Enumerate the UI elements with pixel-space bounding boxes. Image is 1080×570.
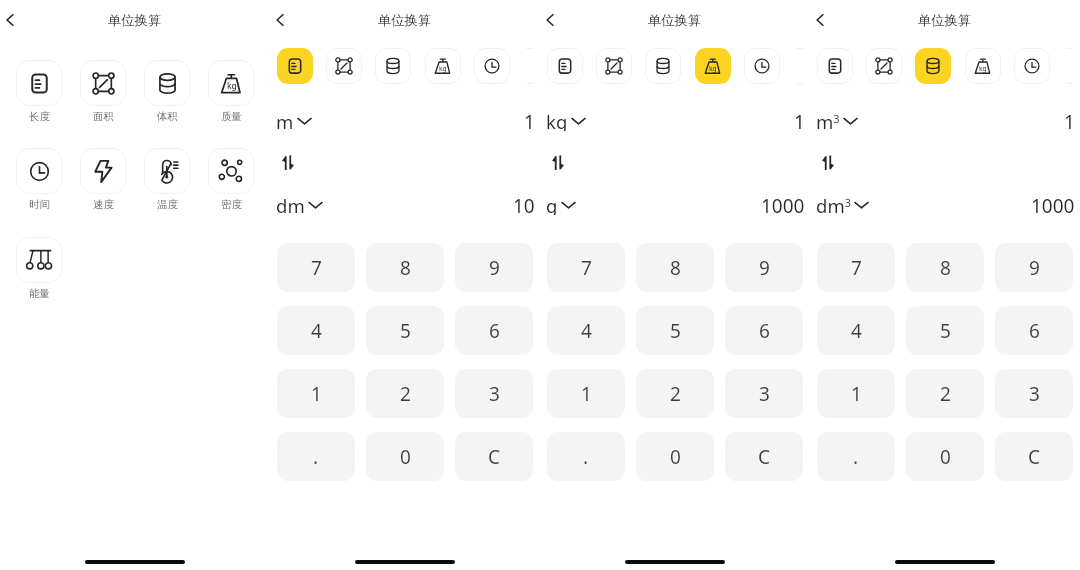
button[interactable]: C bbox=[725, 432, 803, 481]
button[interactable]: . bbox=[277, 432, 355, 481]
staticText: 0 bbox=[940, 444, 951, 470]
staticText: 单位换算 bbox=[108, 12, 162, 29]
button[interactable]: 5 bbox=[636, 306, 714, 355]
staticText: dm3 bbox=[816, 193, 851, 215]
staticText: 时间 bbox=[29, 198, 50, 211]
button[interactable]: 7 bbox=[817, 243, 895, 292]
staticText: 7 bbox=[851, 255, 862, 281]
button[interactable]: Length bbox=[817, 48, 853, 84]
button[interactable]: Back bbox=[270, 10, 290, 30]
button[interactable]: 6 bbox=[995, 306, 1073, 355]
button[interactable]: dm bbox=[276, 193, 323, 215]
button[interactable]: 2 bbox=[636, 369, 714, 418]
button[interactable]: 7 bbox=[547, 243, 625, 292]
button[interactable]: Length bbox=[547, 48, 583, 84]
button[interactable]: 长度 bbox=[16, 60, 62, 123]
button[interactable]: 能量 bbox=[16, 237, 62, 300]
button[interactable]: dm3 bbox=[816, 193, 869, 215]
staticText: 0 bbox=[670, 444, 681, 470]
button[interactable]: kg bbox=[546, 109, 586, 131]
button[interactable]: 5 bbox=[366, 306, 444, 355]
button[interactable]: Time bbox=[1014, 48, 1050, 84]
staticText: C bbox=[1028, 444, 1041, 470]
button[interactable]: 4 bbox=[277, 306, 355, 355]
button[interactable]: 2 bbox=[906, 369, 984, 418]
button[interactable]: Swap units bbox=[276, 151, 299, 174]
button[interactable]: 温度 bbox=[144, 148, 190, 211]
staticText: 1 bbox=[581, 381, 592, 407]
button[interactable]: 3 bbox=[725, 369, 803, 418]
staticText: 1000 bbox=[761, 193, 805, 215]
button[interactable]: 6 bbox=[725, 306, 803, 355]
button[interactable]: 0 bbox=[636, 432, 714, 481]
staticText: 能量 bbox=[29, 287, 50, 300]
staticText: 质量 bbox=[221, 110, 242, 123]
button[interactable]: kg bbox=[208, 60, 254, 123]
staticText: 4 bbox=[851, 318, 862, 344]
button[interactable]: 时间 bbox=[16, 148, 62, 211]
staticText: 长度 bbox=[29, 110, 50, 123]
button[interactable]: Area bbox=[596, 48, 632, 84]
button[interactable]: Time bbox=[474, 48, 510, 84]
staticText: . bbox=[583, 444, 589, 470]
button[interactable]: 6 bbox=[455, 306, 533, 355]
button[interactable]: g bbox=[546, 193, 576, 215]
button[interactable]: 3 bbox=[455, 369, 533, 418]
button[interactable]: 9 bbox=[455, 243, 533, 292]
button[interactable]: Swap units bbox=[546, 151, 569, 174]
button[interactable]: Area bbox=[326, 48, 362, 84]
button[interactable]: C bbox=[995, 432, 1073, 481]
button[interactable]: Mass bbox=[425, 48, 461, 84]
button[interactable]: Time bbox=[744, 48, 780, 84]
staticText: m bbox=[276, 109, 294, 131]
staticText: 1000 bbox=[1031, 193, 1075, 215]
button[interactable]: Mass bbox=[965, 48, 1001, 84]
button[interactable]: Volume bbox=[645, 48, 681, 84]
button[interactable]: . bbox=[547, 432, 625, 481]
button[interactable]: 8 bbox=[636, 243, 714, 292]
button[interactable]: Area bbox=[866, 48, 902, 84]
staticText: 6 bbox=[759, 318, 770, 344]
button[interactable]: Back bbox=[0, 10, 20, 30]
button[interactable]: 0 bbox=[366, 432, 444, 481]
button[interactable]: Mass bbox=[695, 48, 731, 84]
button[interactable]: 密度 bbox=[208, 148, 254, 211]
button[interactable]: 1 bbox=[547, 369, 625, 418]
staticText: 9 bbox=[489, 255, 500, 281]
staticText: 3 bbox=[1029, 381, 1040, 407]
button[interactable]: m bbox=[276, 109, 312, 131]
button[interactable]: 9 bbox=[995, 243, 1073, 292]
button[interactable]: 3 bbox=[995, 369, 1073, 418]
button[interactable]: 5 bbox=[906, 306, 984, 355]
button[interactable]: 9 bbox=[725, 243, 803, 292]
button[interactable]: 面积 bbox=[80, 60, 126, 123]
button[interactable]: 8 bbox=[906, 243, 984, 292]
button[interactable]: C bbox=[455, 432, 533, 481]
button[interactable]: Swap units bbox=[816, 151, 839, 174]
button[interactable]: Back bbox=[810, 10, 830, 30]
button[interactable]: 0 bbox=[906, 432, 984, 481]
button[interactable]: Volume bbox=[375, 48, 411, 84]
staticText: . bbox=[853, 444, 859, 470]
button[interactable]: Back bbox=[540, 10, 560, 30]
staticText: kg bbox=[439, 64, 447, 73]
button[interactable]: 1 bbox=[817, 369, 895, 418]
button[interactable]: 2 bbox=[366, 369, 444, 418]
button[interactable]: 4 bbox=[547, 306, 625, 355]
button[interactable]: 8 bbox=[366, 243, 444, 292]
staticText: 3 bbox=[489, 381, 500, 407]
button[interactable]: m3 bbox=[816, 109, 858, 131]
button[interactable]: 4 bbox=[817, 306, 895, 355]
button[interactable]: Length bbox=[277, 48, 313, 84]
button[interactable]: 7 bbox=[277, 243, 355, 292]
staticText: 9 bbox=[759, 255, 770, 281]
button[interactable]: 速度 bbox=[80, 148, 126, 211]
button[interactable]: 体积 bbox=[144, 60, 190, 123]
staticText: 2 bbox=[670, 381, 681, 407]
button[interactable]: . bbox=[817, 432, 895, 481]
button[interactable]: Volume bbox=[915, 48, 951, 84]
button[interactable]: 1 bbox=[277, 369, 355, 418]
